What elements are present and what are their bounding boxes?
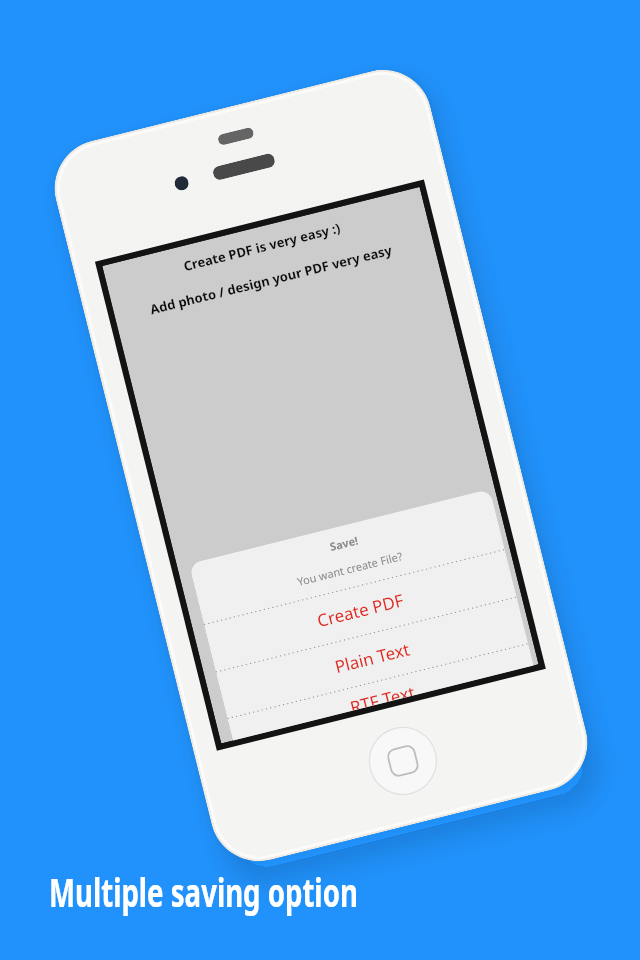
button[interactable]: RTF Text <box>227 643 534 740</box>
staticText: You want create File? <box>296 548 404 589</box>
staticText: Create PDF is very easy :) <box>182 219 342 275</box>
button[interactable]: Plain Text <box>216 597 528 719</box>
staticText: Plain Text <box>332 637 413 678</box>
staticText: RTF Text <box>348 680 415 711</box>
button[interactable]: Home <box>360 718 445 803</box>
staticText: Multiple saving option <box>49 864 358 918</box>
button[interactable]: Create PDF <box>204 549 516 671</box>
staticText: Add photo / design your PDF very easy <box>148 241 394 318</box>
staticText: Create PDF <box>315 588 407 632</box>
staticText: Save! <box>328 532 360 554</box>
